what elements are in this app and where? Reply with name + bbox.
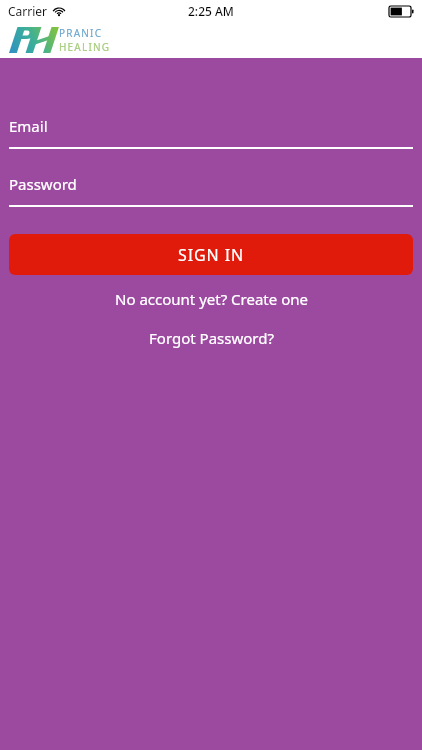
- staticText: Forgot Password?: [149, 328, 274, 348]
- button[interactable]: SIGN IN: [9, 234, 413, 275]
- staticText: Password: [9, 174, 77, 194]
- button[interactable]: No account yet? Create one: [0, 283, 422, 315]
- button[interactable]: Password: [9, 170, 413, 207]
- other: Pranic Healing logo: [9, 27, 55, 53]
- button[interactable]: Forgot Password?: [0, 322, 422, 354]
- staticText: HEALING: [59, 40, 111, 54]
- staticText: 2:25 AM: [188, 3, 234, 19]
- staticText: SIGN IN: [178, 244, 245, 266]
- other: Wi-Fi: [53, 6, 65, 16]
- staticText: PRANIC: [59, 26, 103, 40]
- other: Battery: [389, 6, 414, 17]
- staticText: Email: [9, 116, 48, 136]
- staticText: No account yet? Create one: [115, 289, 308, 309]
- staticText: Carrier: [8, 3, 48, 19]
- button[interactable]: Email: [9, 112, 413, 149]
